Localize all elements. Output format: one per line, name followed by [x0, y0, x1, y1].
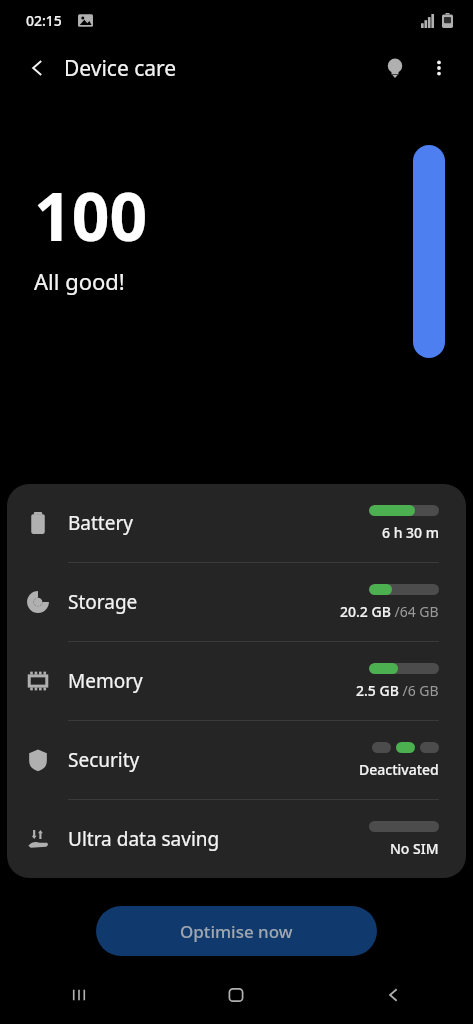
staticText: Security [68, 747, 359, 773]
button[interactable]: Back [315, 966, 473, 1024]
button[interactable]: Home [157, 966, 315, 1024]
button[interactable]: Memory [7, 642, 466, 720]
button[interactable]: Storage [7, 563, 466, 641]
button[interactable]: Security [7, 721, 466, 799]
button[interactable]: More options [417, 46, 461, 90]
staticText: 6 h 30 m [382, 523, 439, 542]
staticText: Device care [64, 54, 177, 83]
staticText: No SIM [390, 839, 439, 858]
button[interactable]: Tips [373, 46, 417, 90]
staticText: 2.5 GB /6 GB [356, 681, 439, 700]
staticText: Ultra data saving [68, 826, 369, 852]
staticText: Optimise now [180, 920, 293, 943]
staticText: 100 [34, 170, 148, 260]
button[interactable]: Battery [7, 484, 466, 562]
staticText: Storage [68, 589, 340, 615]
staticText: 20.2 GB /64 GB [340, 602, 439, 621]
button[interactable]: Optimise now [96, 906, 377, 956]
staticText: 02:15 [26, 11, 62, 30]
button[interactable]: Back [16, 46, 60, 90]
staticText: Deactivated [359, 760, 439, 779]
staticText: Battery [68, 510, 369, 536]
staticText: Memory [68, 668, 356, 694]
button[interactable]: Ultra data saving [7, 800, 466, 878]
staticText: All good! [34, 266, 125, 296]
button[interactable]: Recent apps [0, 966, 157, 1024]
